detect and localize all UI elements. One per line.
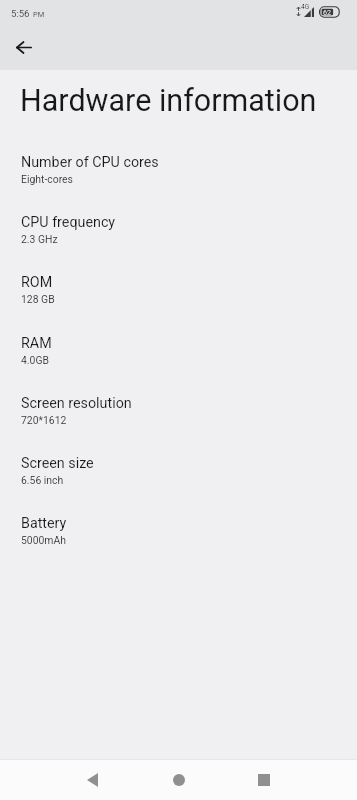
staticText: 5:56 [11,8,30,19]
button[interactable]: Back [70,760,115,800]
button[interactable]: Battery [0,510,357,570]
staticText: ROM [21,274,53,291]
button[interactable]: Number of CPU cores [0,149,357,209]
staticText: 6.56 inch [21,474,64,486]
button[interactable]: Recent apps [241,760,286,800]
staticText: 720*1612 [21,414,67,426]
staticText: 2.3 GHz [21,233,58,245]
staticText: PM [33,10,45,19]
staticText: CPU frequency [21,214,116,231]
button[interactable]: ROM [0,269,357,329]
staticText: Screen resolution [21,395,132,412]
button[interactable]: Screen resolution [0,390,357,450]
staticText: 5000mAh [21,534,66,546]
staticText: 4.0GB [21,354,49,366]
button[interactable]: Screen size [0,450,357,510]
staticText: Hardware information [20,83,317,119]
staticText: RAM [21,335,52,352]
button[interactable]: CPU frequency [0,209,357,269]
staticText: Screen size [21,455,94,472]
button[interactable]: RAM [0,330,357,390]
button[interactable]: Home [156,760,201,800]
staticText: Battery [21,515,67,532]
staticText: Number of CPU cores [21,154,159,171]
staticText: Eight-cores [21,173,73,185]
button[interactable]: Back [9,32,39,62]
staticText: 4G [301,3,310,11]
staticText: 128 GB [21,293,55,305]
staticText: 62 [323,8,332,16]
